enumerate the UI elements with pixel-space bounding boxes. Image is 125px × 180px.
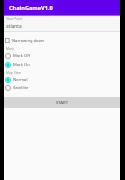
button[interactable] — [4, 17, 120, 31]
staticText: ChainGameV1.0 — [9, 4, 53, 12]
staticText: START — [56, 100, 69, 106]
button[interactable]: Mark Off — [5, 52, 30, 59]
staticText: atlanta — [6, 23, 22, 30]
button[interactable]: Satellite — [5, 84, 29, 91]
staticText: Narrowing down — [12, 38, 45, 44]
button[interactable]: Mark On — [5, 61, 30, 68]
button[interactable]: Start — [4, 97, 120, 108]
staticText: Mark — [6, 46, 14, 50]
staticText: Start Point — [6, 16, 23, 20]
staticText: Map View — [6, 70, 21, 74]
staticText: Normal — [13, 77, 28, 83]
button[interactable]: Normal — [5, 76, 28, 83]
button[interactable]: Narrowing down — [5, 37, 45, 44]
button[interactable]: ChainGameV1.0 — [4, 0, 120, 15]
staticText: Mark On — [13, 62, 30, 68]
staticText: Mark Off — [13, 53, 30, 59]
staticText: Satellite — [13, 85, 29, 91]
